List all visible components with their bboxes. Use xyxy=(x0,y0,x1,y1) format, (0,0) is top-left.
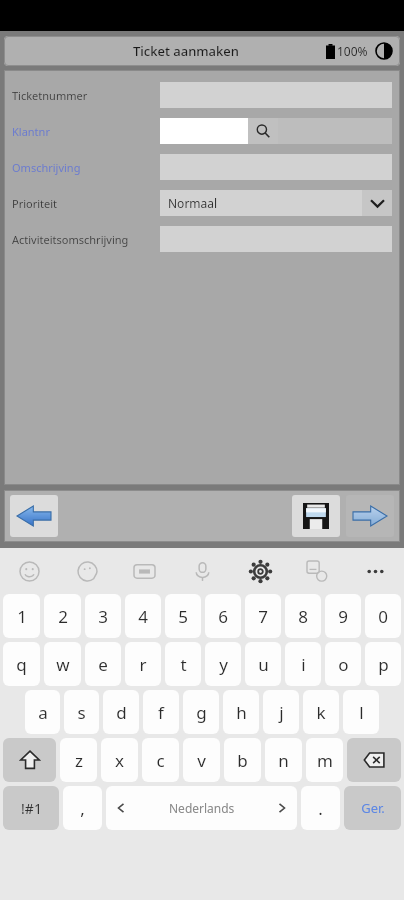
staticText: 6 xyxy=(218,605,228,628)
button[interactable]: 3 xyxy=(85,594,121,638)
staticText: 5 xyxy=(178,605,188,628)
button[interactable]: Emoji xyxy=(12,554,46,588)
staticText: q xyxy=(16,653,27,676)
staticText: !#1 xyxy=(21,799,42,818)
staticText: h xyxy=(236,701,247,724)
button[interactable]: !#1 xyxy=(3,786,59,830)
staticText: 1 xyxy=(17,605,27,628)
staticText: 2 xyxy=(58,605,68,628)
staticText: t xyxy=(180,653,187,676)
button[interactable]: 4 xyxy=(125,594,161,638)
button[interactable]: o xyxy=(325,642,361,686)
button[interactable]: Nederlands xyxy=(106,786,297,830)
button[interactable]: q xyxy=(3,642,40,686)
staticText: Nederlands xyxy=(169,800,235,816)
staticText: . xyxy=(318,797,323,820)
button[interactable]: l xyxy=(343,690,379,734)
button[interactable]: Zoeken xyxy=(248,118,278,144)
staticText: 3 xyxy=(98,605,108,628)
button[interactable]: v xyxy=(183,738,220,782)
button[interactable]: Shift xyxy=(3,738,56,782)
button[interactable]: Instellingen xyxy=(243,554,277,588)
button[interactable]: , xyxy=(63,786,102,830)
button[interactable]: Terug xyxy=(10,495,58,537)
button[interactable]: n xyxy=(265,738,302,782)
button[interactable]: Normaal xyxy=(160,190,362,216)
button[interactable]: m xyxy=(306,738,343,782)
button[interactable]: b xyxy=(224,738,261,782)
button[interactable]: e xyxy=(85,642,121,686)
button[interactable]: 2 xyxy=(44,594,81,638)
staticText: o xyxy=(338,653,349,676)
button[interactable]: d xyxy=(103,690,139,734)
button[interactable]: y xyxy=(205,642,241,686)
button[interactable]: Volgende xyxy=(346,495,394,537)
button[interactable]: a xyxy=(25,690,60,734)
staticText: k xyxy=(316,701,326,724)
staticText: 8 xyxy=(298,605,308,628)
staticText: j xyxy=(279,701,284,724)
button[interactable]: h xyxy=(223,690,259,734)
button[interactable]: Meer xyxy=(358,554,392,588)
button[interactable]: w xyxy=(44,642,81,686)
button[interactable]: Uitklappen xyxy=(362,190,392,216)
staticText: f xyxy=(158,701,164,724)
button[interactable]: 1 xyxy=(3,594,40,638)
button[interactable]: 8 xyxy=(285,594,321,638)
button[interactable]: g xyxy=(183,690,219,734)
staticText: Ticket aanmaken xyxy=(133,42,239,60)
staticText: Activiteitsomschrijving xyxy=(12,232,129,247)
staticText: i xyxy=(301,653,306,676)
button[interactable]: r xyxy=(125,642,161,686)
button[interactable]: i xyxy=(285,642,321,686)
button[interactable]: u xyxy=(245,642,281,686)
staticText: Omschrijving xyxy=(12,160,81,175)
button[interactable]: c xyxy=(142,738,179,782)
staticText: w xyxy=(56,653,70,676)
button[interactable]: j xyxy=(263,690,299,734)
staticText: v xyxy=(197,749,206,772)
button[interactable]: Spraakinvoer xyxy=(185,554,219,588)
button[interactable]: f xyxy=(143,690,179,734)
button[interactable]: 7 xyxy=(245,594,281,638)
staticText: c xyxy=(156,749,165,772)
staticText: 9 xyxy=(338,605,348,628)
button[interactable]: k xyxy=(303,690,339,734)
staticText: Prioriteit xyxy=(12,196,58,211)
button[interactable]: x xyxy=(101,738,138,782)
button[interactable]: 9 xyxy=(325,594,361,638)
button[interactable]: Backspace xyxy=(347,738,401,782)
button[interactable]: . xyxy=(301,786,340,830)
staticText: u xyxy=(258,653,269,676)
button[interactable]: s xyxy=(64,690,99,734)
button[interactable]: Ger. xyxy=(344,786,401,830)
button[interactable]: 6 xyxy=(205,594,241,638)
staticText: g xyxy=(196,701,207,724)
staticText: 0 xyxy=(378,605,388,628)
button[interactable]: p xyxy=(365,642,401,686)
staticText: Normaal xyxy=(168,195,218,211)
staticText: s xyxy=(77,701,86,724)
staticText: p xyxy=(378,653,389,676)
staticText: b xyxy=(237,749,248,772)
button[interactable]: Opslaan xyxy=(292,495,340,537)
staticText: e xyxy=(98,653,108,676)
button[interactable]: t xyxy=(165,642,201,686)
button[interactable]: 5 xyxy=(165,594,201,638)
staticText: 7 xyxy=(258,605,268,628)
staticText: Klantnr xyxy=(12,124,50,139)
staticText: y xyxy=(219,653,228,676)
button[interactable]: z xyxy=(60,738,97,782)
button[interactable]: Vertalen xyxy=(300,554,334,588)
button[interactable]: 0 xyxy=(365,594,401,638)
staticText: 100% xyxy=(337,43,368,59)
button[interactable]: GIF xyxy=(127,554,161,588)
button[interactable]: Stickers xyxy=(70,554,104,588)
staticText: Ger. xyxy=(361,799,385,817)
staticText: Ticketnummer xyxy=(12,88,88,103)
staticText: , xyxy=(80,797,85,820)
